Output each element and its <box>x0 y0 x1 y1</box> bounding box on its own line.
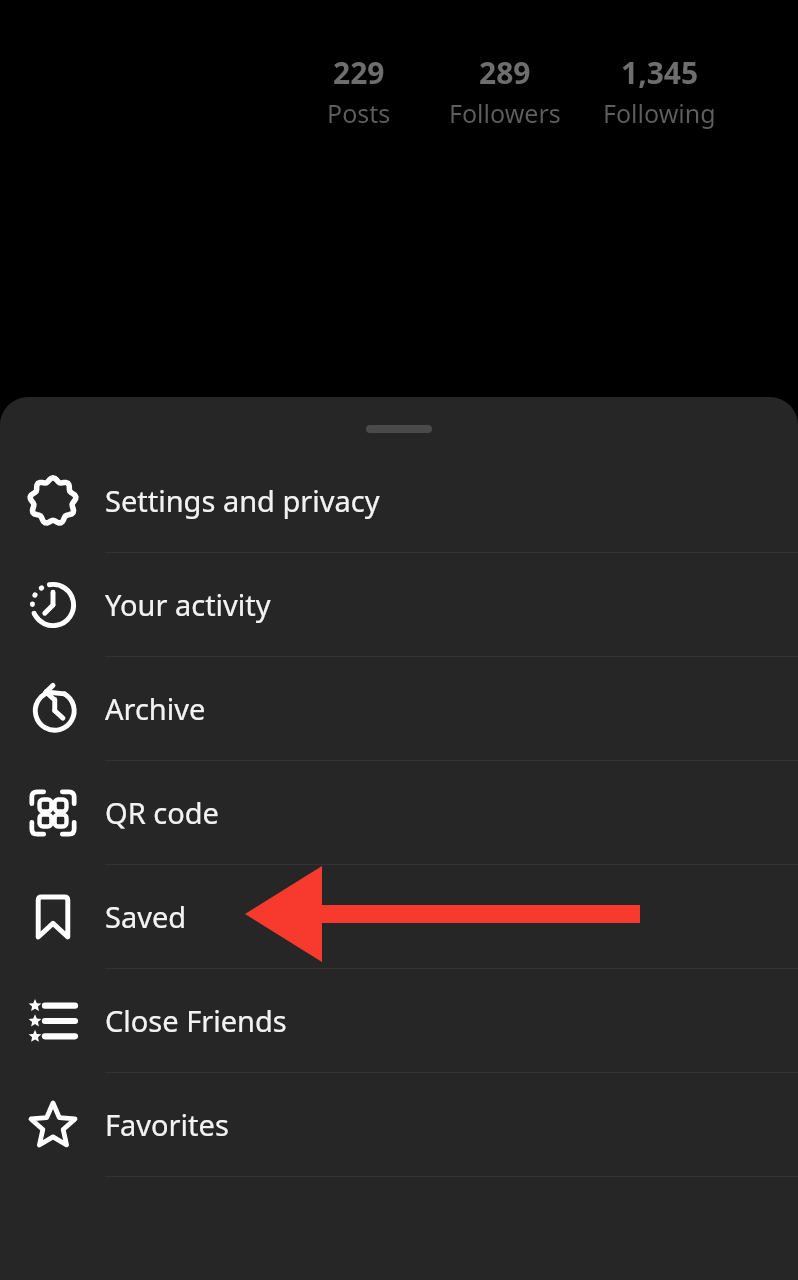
staticText: Favorites <box>105 1105 229 1144</box>
button[interactable]: Archive <box>0 657 798 760</box>
staticText: Following <box>603 96 716 130</box>
button[interactable]: Favorites <box>0 1073 798 1176</box>
staticText: 1,345 <box>621 52 699 93</box>
staticText: 229 <box>333 52 385 93</box>
staticText: Close Friends <box>105 1001 287 1040</box>
staticText: QR code <box>105 793 219 832</box>
staticText: Saved <box>105 897 187 936</box>
staticText: Archive <box>105 689 206 728</box>
staticText: Followers <box>449 96 561 130</box>
button[interactable]: Settings and privacy <box>0 449 798 552</box>
staticText: Your activity <box>105 585 271 624</box>
staticText: Settings and privacy <box>105 481 380 520</box>
button[interactable]: Saved <box>0 865 798 968</box>
staticText: 289 <box>479 52 531 93</box>
button[interactable]: Your activity <box>0 553 798 656</box>
button[interactable]: Close Friends <box>0 969 798 1072</box>
staticText: Posts <box>327 96 391 130</box>
button[interactable]: QR code <box>0 761 798 864</box>
